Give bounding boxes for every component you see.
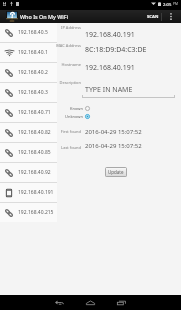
staticText: 192.168.40.191 [85, 30, 135, 40]
staticText: 2:05 [163, 2, 172, 8]
button[interactable]: SCAN [145, 10, 161, 23]
staticText: Update [108, 169, 124, 175]
staticText: Description [59, 80, 81, 85]
staticText: 192.168.40.2 [18, 69, 48, 76]
button[interactable]: 192.168.40.191 [0, 183, 57, 202]
staticText: Hostname [61, 62, 81, 67]
staticText: Who Is On My WiFi [20, 13, 69, 20]
staticText: 192.168.40.82 [18, 129, 51, 136]
staticText: 192.168.40.85 [18, 149, 51, 156]
button[interactable]: Update [105, 167, 127, 177]
staticText: IP Address [61, 25, 81, 30]
staticText: 192.168.40.191 [18, 189, 54, 196]
staticText: 192.168.40.215 [18, 209, 54, 216]
staticText: Unknown [65, 114, 83, 119]
staticText: 192.168.40.3 [18, 89, 48, 96]
staticText: 192.168.40.5 [18, 29, 48, 36]
button[interactable]: Back [49, 295, 69, 310]
staticText: 2016-04-29 15:07:52 [85, 142, 142, 150]
button[interactable]: Known [60, 105, 92, 112]
button[interactable]: 192.168.40.71 [0, 103, 57, 122]
staticText: PM [173, 2, 178, 6]
button[interactable]: Recents [111, 295, 131, 310]
button[interactable]: 192.168.40.2 [0, 63, 57, 82]
staticText: First found [60, 129, 81, 134]
staticText: 192.168.40.1 [18, 49, 48, 56]
button[interactable]: 192.168.40.215 [0, 203, 57, 222]
button[interactable]: 192.168.40.85 [0, 143, 57, 162]
button[interactable]: 192.168.40.5 [0, 23, 57, 42]
staticText: SCAN [147, 14, 159, 20]
button[interactable]: 192.168.40.1 [0, 43, 57, 62]
staticText: 192.168.40.191 [85, 63, 135, 73]
staticText: Known [70, 106, 83, 111]
staticText: Last found [61, 145, 81, 150]
button[interactable]: 192.168.40.3 [0, 83, 57, 102]
button[interactable]: More options [163, 10, 179, 23]
staticText: 192.168.40.92 [18, 169, 51, 176]
staticText: 192.168.40.71 [18, 109, 51, 116]
button[interactable]: Home [80, 295, 100, 310]
staticText: MAC Address [56, 43, 81, 48]
staticText: TYPE IN NAME [85, 85, 133, 95]
button[interactable]: 192.168.40.92 [0, 163, 57, 182]
staticText: 2016-04-29 15:07:52 [85, 128, 142, 136]
button[interactable]: Unknown [60, 113, 92, 120]
button[interactable]: 192.168.40.82 [0, 123, 57, 142]
staticText: 8C:18:D9:D4:C3:DE [85, 45, 147, 55]
